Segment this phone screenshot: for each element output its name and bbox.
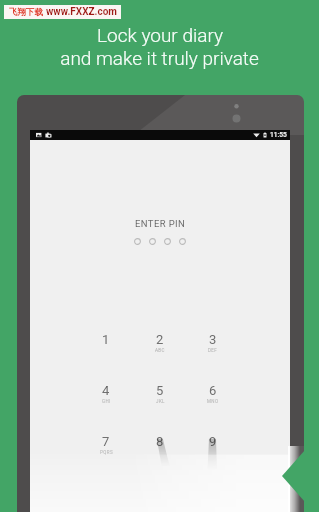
staticText: MNO bbox=[207, 399, 219, 404]
staticText: and make it truly private bbox=[60, 47, 259, 69]
staticText: GHI bbox=[102, 399, 111, 404]
staticText: 4 bbox=[102, 383, 110, 398]
button[interactable]: 9 bbox=[200, 434, 226, 449]
button[interactable]: 6 bbox=[200, 383, 226, 404]
staticText: 2 bbox=[156, 332, 164, 347]
staticText: PQRS bbox=[100, 450, 113, 455]
button[interactable]: 2 bbox=[147, 332, 173, 353]
staticText: 11:55 bbox=[270, 131, 287, 139]
staticText: 5 bbox=[156, 383, 164, 398]
staticText: DEF bbox=[208, 348, 218, 353]
staticText: 9 bbox=[209, 434, 217, 449]
staticText: 7 bbox=[102, 434, 110, 449]
staticText: JKL bbox=[156, 399, 165, 404]
staticText: 3 bbox=[209, 332, 217, 347]
staticText: ENTER PIN bbox=[135, 218, 186, 229]
button[interactable]: 1 bbox=[93, 332, 119, 347]
staticText: ABC bbox=[155, 348, 165, 353]
staticText: 6 bbox=[209, 383, 217, 398]
staticText: 飞翔下载 bbox=[9, 7, 43, 18]
staticText: Lock your diary bbox=[97, 24, 223, 46]
button[interactable]: 3 bbox=[200, 332, 226, 353]
button[interactable]: 4 bbox=[93, 383, 119, 404]
button[interactable]: Status bar bbox=[30, 130, 290, 140]
staticText: 8 bbox=[156, 434, 164, 449]
staticText: 1 bbox=[102, 332, 110, 347]
button[interactable]: 7 bbox=[93, 434, 119, 455]
button[interactable]: 5 bbox=[147, 383, 173, 404]
staticText: www.FXXZ.com bbox=[46, 6, 117, 18]
button[interactable]: 8 bbox=[147, 434, 173, 449]
